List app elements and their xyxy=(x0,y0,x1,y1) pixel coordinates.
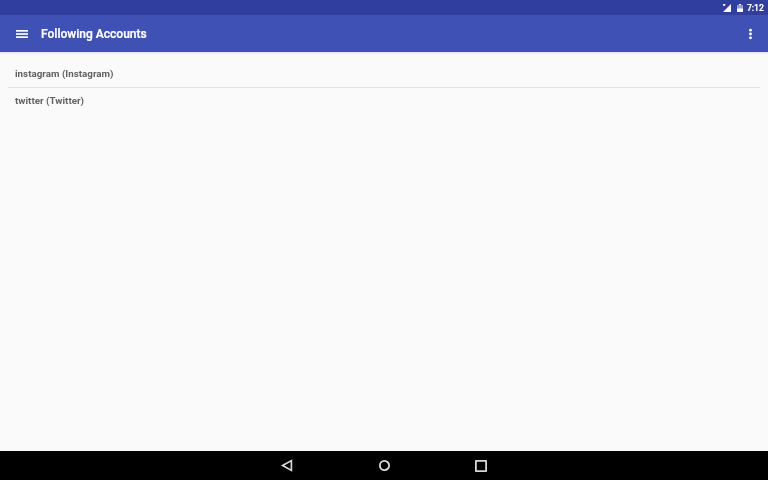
staticText: 7:12 xyxy=(747,3,764,13)
button[interactable]: Open navigation drawer xyxy=(0,15,40,52)
staticText: instagram (Instagram) xyxy=(15,68,114,79)
button[interactable]: Home xyxy=(360,451,408,480)
button[interactable]: More options xyxy=(731,15,768,52)
staticText: Following Accounts xyxy=(41,27,147,41)
button[interactable]: Back xyxy=(263,451,311,480)
staticText: twitter (Twitter) xyxy=(15,95,85,106)
button[interactable]: Recent apps xyxy=(457,451,505,480)
button[interactable]: twitter (Twitter) xyxy=(0,88,768,114)
button[interactable]: instagram (Instagram) xyxy=(0,61,768,87)
